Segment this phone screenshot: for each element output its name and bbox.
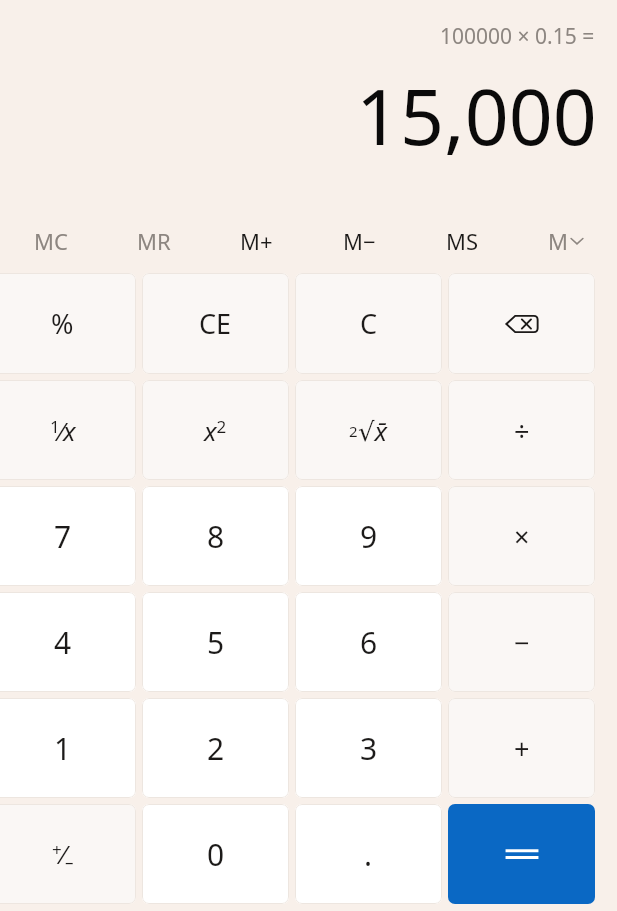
button[interactable]: MS xyxy=(411,212,514,270)
button[interactable]: MC xyxy=(0,212,102,270)
button[interactable]: CE xyxy=(142,273,289,374)
staticText: ÷ xyxy=(514,412,530,449)
staticText: √x̄ xyxy=(358,413,388,448)
button[interactable]: 3 xyxy=(295,698,442,798)
button[interactable]: M+ xyxy=(205,212,308,270)
button[interactable]: + xyxy=(448,698,595,798)
button[interactable]: x2 xyxy=(142,380,289,480)
button[interactable]: 2 xyxy=(142,698,289,798)
staticText: 3 xyxy=(360,728,378,769)
button[interactable]: 7 xyxy=(0,486,136,586)
staticText: 100000 × 0.15 = xyxy=(440,22,595,51)
staticText: 9 xyxy=(360,516,378,557)
staticText: 1 xyxy=(54,728,72,769)
button[interactable]: Backspace xyxy=(448,273,595,374)
button[interactable]: 6 xyxy=(295,592,442,692)
button[interactable]: 9 xyxy=(295,486,442,586)
button[interactable]: × xyxy=(448,486,595,586)
button[interactable]: 1⁄x xyxy=(0,380,136,480)
staticText: 1⁄x xyxy=(50,413,76,448)
button[interactable]: − xyxy=(448,592,595,692)
staticText: 0 xyxy=(207,834,225,875)
button[interactable]: % xyxy=(0,273,136,374)
staticText: 6 xyxy=(360,622,378,663)
button[interactable]: MR xyxy=(102,212,205,270)
button[interactable]: C xyxy=(295,273,442,374)
button[interactable]: . xyxy=(295,804,442,904)
button[interactable]: 2 xyxy=(295,380,442,480)
staticText: . xyxy=(364,834,373,875)
staticText: MS xyxy=(446,226,479,256)
staticText: C xyxy=(360,305,378,342)
staticText: 2 xyxy=(207,728,225,769)
staticText: + xyxy=(514,730,530,767)
staticText: x2 xyxy=(204,413,227,448)
staticText: % xyxy=(51,305,74,342)
button[interactable]: Plus minus xyxy=(0,804,136,904)
staticText: M+ xyxy=(240,226,273,256)
staticText: × xyxy=(514,518,530,555)
staticText: +⁄– xyxy=(52,836,74,873)
staticText: MC xyxy=(34,226,68,256)
button[interactable]: 5 xyxy=(142,592,289,692)
staticText: M xyxy=(548,226,568,256)
button[interactable]: Memory list xyxy=(514,212,617,270)
button[interactable]: 1 xyxy=(0,698,136,798)
staticText: MR xyxy=(137,226,171,256)
button[interactable]: M− xyxy=(308,212,411,270)
staticText: CE xyxy=(199,305,232,342)
button[interactable]: ÷ xyxy=(448,380,595,480)
staticText: M− xyxy=(343,226,376,256)
staticText: 15,000 xyxy=(356,63,597,168)
staticText: 7 xyxy=(54,516,72,557)
button[interactable]: 4 xyxy=(0,592,136,692)
button[interactable]: 0 xyxy=(142,804,289,904)
staticText: 8 xyxy=(207,516,225,557)
button[interactable]: Equals xyxy=(448,804,595,904)
staticText: 5 xyxy=(207,622,225,663)
staticText: 4 xyxy=(54,622,72,663)
staticText: 2 xyxy=(349,421,358,441)
staticText: − xyxy=(514,624,530,661)
button[interactable]: 8 xyxy=(142,486,289,586)
